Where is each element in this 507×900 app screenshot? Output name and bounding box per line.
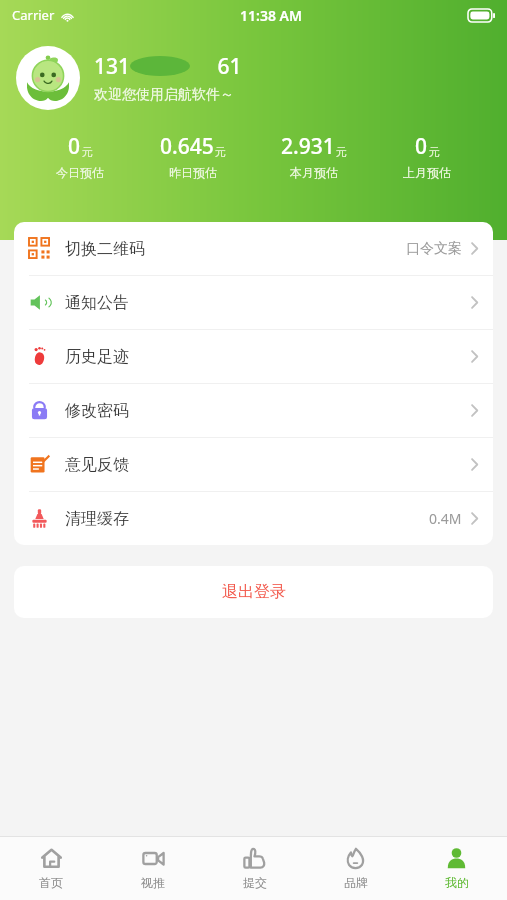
button[interactable]: 首页	[0, 837, 102, 900]
button[interactable]: 修改密码	[14, 384, 493, 437]
button[interactable]: 意见反馈	[14, 438, 493, 491]
staticText: 修改密码	[65, 401, 129, 421]
staticText: 131 61	[94, 52, 242, 81]
staticText: 清理缓存	[65, 509, 129, 529]
staticText: 0.4M	[429, 509, 462, 528]
staticText: 首页	[39, 875, 63, 890]
staticText: 口令文案	[406, 240, 462, 258]
staticText: 历史足迹	[65, 347, 129, 367]
staticText: 元	[336, 145, 347, 159]
button[interactable]: 我的	[406, 837, 507, 900]
staticText: 意见反馈	[65, 455, 129, 475]
button[interactable]: 品牌	[305, 837, 406, 900]
staticText: 欢迎您使用启航软件～	[94, 86, 234, 104]
button[interactable]: 退出登录	[14, 566, 493, 618]
button[interactable]: 视推	[102, 837, 204, 900]
staticText: Carrier	[12, 6, 55, 24]
staticText: 上月预估	[403, 165, 451, 180]
staticText: 0	[415, 132, 428, 161]
staticText: 提交	[243, 875, 267, 890]
staticText: 0	[68, 132, 81, 161]
staticText: 我的	[445, 875, 469, 890]
staticText: 元	[429, 145, 440, 159]
staticText: 元	[215, 145, 226, 159]
button[interactable]: 通知公告	[14, 276, 493, 329]
staticText: 视推	[141, 875, 165, 890]
staticText: 退出登录	[222, 582, 286, 602]
staticText: 品牌	[344, 875, 368, 890]
staticText: 11:38 AM	[240, 6, 302, 25]
staticText: 切换二维码	[65, 239, 145, 259]
button[interactable]: 清理缓存	[14, 492, 493, 545]
staticText: 本月预估	[290, 165, 338, 180]
button[interactable]: 切换二维码	[14, 222, 493, 275]
staticText: 昨日预估	[169, 165, 217, 180]
staticText: 0.645	[160, 132, 214, 161]
staticText: 通知公告	[65, 293, 129, 313]
button[interactable]: 提交	[204, 837, 305, 900]
staticText: 今日预估	[56, 165, 104, 180]
staticText: 2.931	[281, 132, 335, 161]
staticText: 元	[82, 145, 93, 159]
button[interactable]: 历史足迹	[14, 330, 493, 383]
